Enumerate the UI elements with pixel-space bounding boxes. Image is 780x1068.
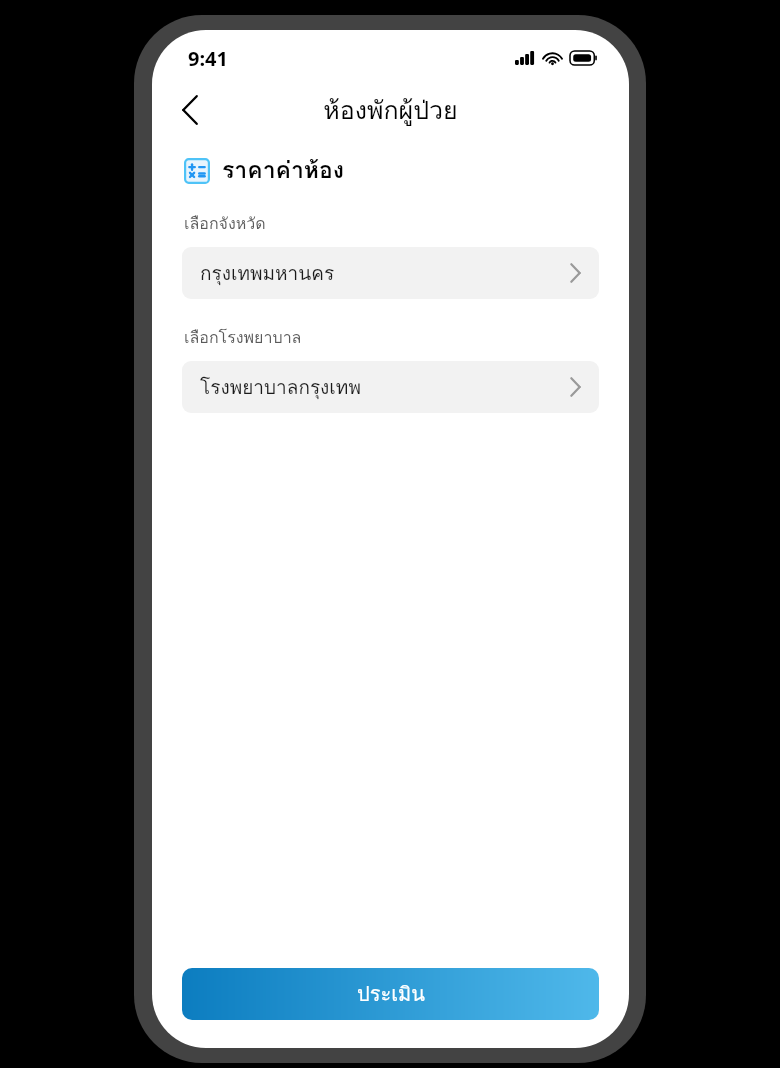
staticText: ห้องพักผู้ป่วย bbox=[323, 90, 458, 130]
button[interactable]: โรงพยาบาลกรุงเทพ bbox=[182, 361, 599, 413]
staticText: เลือกจังหวัด bbox=[184, 211, 266, 236]
button[interactable]: Back bbox=[166, 86, 214, 134]
staticText: 9:41 bbox=[188, 45, 228, 72]
staticText: โรงพยาบาลกรุงเทพ bbox=[200, 372, 361, 402]
button[interactable]: กรุงเทพมหานคร bbox=[182, 247, 599, 299]
staticText: ราคาค่าห้อง bbox=[222, 152, 345, 189]
staticText: กรุงเทพมหานคร bbox=[200, 258, 335, 288]
staticText: เลือกโรงพยาบาล bbox=[184, 325, 302, 350]
button[interactable]: ประเมิน bbox=[182, 968, 599, 1020]
staticText: ประเมิน bbox=[357, 978, 425, 1010]
